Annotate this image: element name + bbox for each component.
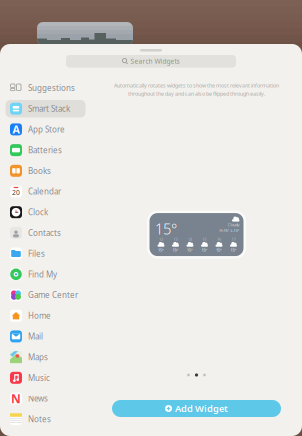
button[interactable]: Notes: [5, 410, 85, 428]
staticText: 15°: [187, 247, 193, 253]
staticText: Maps: [28, 352, 48, 362]
staticText: throughout the day and can also be flipp…: [128, 90, 265, 97]
button[interactable]: Batteries: [5, 141, 85, 159]
staticText: 15°: [172, 247, 178, 253]
staticText: Search Widgets: [130, 57, 179, 66]
staticText: Music: [28, 372, 50, 383]
button[interactable]: Suggestions: [5, 79, 85, 97]
staticText: Find My: [28, 269, 57, 280]
staticText: Automatically rotates widgets to show th…: [114, 82, 279, 89]
staticText: Books: [28, 165, 51, 176]
staticText: 15°: [155, 219, 177, 238]
staticText: 15°: [216, 247, 222, 253]
staticText: N: [11, 390, 21, 406]
staticText: App Store: [28, 124, 65, 135]
staticText: News: [28, 393, 48, 404]
button[interactable]: Contacts: [5, 224, 85, 242]
button[interactable]: A: [5, 121, 85, 138]
button[interactable]: Search Widgets: [66, 55, 236, 67]
staticText: Smart Stack: [28, 103, 70, 114]
staticText: 15: [202, 236, 206, 242]
button[interactable]: 20: [5, 183, 85, 200]
staticText: 17: [231, 236, 235, 242]
staticText: Home: [28, 310, 51, 321]
staticText: 15°: [201, 247, 207, 253]
staticText: 15°: [158, 247, 164, 253]
button[interactable]: Clock: [5, 203, 85, 221]
button[interactable]: N: [5, 390, 85, 407]
staticText: Clock: [28, 207, 48, 217]
staticText: Calendar: [28, 186, 61, 197]
staticText: 12: [159, 236, 163, 242]
button[interactable]: Books: [5, 162, 85, 180]
button[interactable]: Home: [5, 307, 85, 324]
staticText: 16: [217, 236, 221, 242]
staticText: H:16° L:13°: [219, 228, 239, 233]
button[interactable]: Find My: [5, 265, 85, 283]
staticText: Mail: [28, 331, 43, 342]
button[interactable]: Maps: [5, 348, 85, 366]
button[interactable]: Mail: [5, 328, 85, 345]
staticText: Files: [28, 248, 45, 259]
button[interactable]: Smart Stack: [5, 100, 85, 117]
button[interactable]: Music: [5, 369, 85, 386]
staticText: Contacts: [28, 228, 61, 238]
button[interactable]: Files: [5, 245, 85, 262]
staticText: 13: [173, 236, 177, 242]
staticText: 15°: [230, 247, 236, 253]
staticText: 14: [188, 236, 192, 242]
staticText: Notes: [28, 414, 51, 424]
staticText: Suggestions: [28, 83, 75, 93]
button[interactable]: Add Widget: [112, 400, 281, 417]
staticText: Add Widget: [175, 402, 228, 415]
staticText: Game Center: [28, 290, 78, 300]
button[interactable]: Game Center: [5, 286, 85, 304]
staticText: A: [12, 122, 19, 136]
staticText: Cloudy: [227, 222, 239, 227]
staticText: 20: [12, 188, 20, 197]
staticText: Batteries: [28, 145, 62, 155]
